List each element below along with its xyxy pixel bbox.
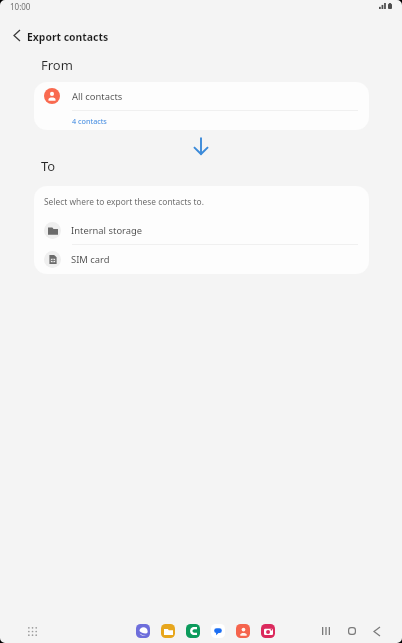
button[interactable]: Back bbox=[4, 22, 30, 48]
button[interactable]: Home bbox=[343, 622, 361, 640]
button[interactable]: Phone bbox=[186, 624, 200, 638]
button[interactable]: Camera bbox=[261, 624, 275, 638]
staticText: All contacts bbox=[72, 90, 123, 103]
staticText: From bbox=[41, 56, 73, 74]
staticText: Select where to export these contacts to… bbox=[44, 196, 204, 207]
button[interactable]: SIM card bbox=[34, 245, 369, 274]
button[interactable]: Internal storage bbox=[34, 216, 369, 245]
button[interactable]: Recents bbox=[317, 622, 335, 640]
button[interactable]: All contacts bbox=[34, 82, 369, 110]
staticText: SIM card bbox=[71, 253, 110, 266]
staticText: 4 contacts bbox=[72, 116, 107, 126]
button[interactable]: Messages bbox=[211, 624, 225, 638]
staticText: To bbox=[41, 157, 56, 175]
staticText: Export contacts bbox=[27, 30, 109, 44]
button[interactable]: Internet bbox=[136, 624, 150, 638]
button[interactable]: My Files bbox=[161, 624, 175, 638]
button[interactable]: Back bbox=[368, 622, 386, 640]
staticText: 10:00 bbox=[10, 1, 31, 12]
button[interactable]: Contacts bbox=[236, 624, 250, 638]
staticText: Internal storage bbox=[71, 224, 143, 237]
button[interactable]: Apps bbox=[23, 622, 41, 640]
